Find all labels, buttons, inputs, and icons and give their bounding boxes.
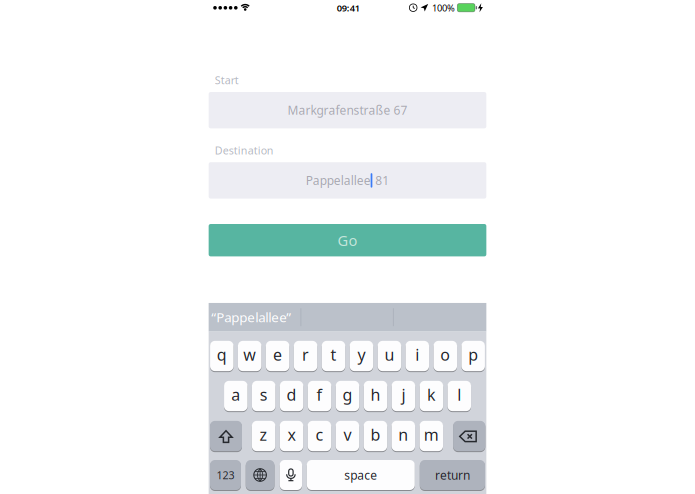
button[interactable]: r (294, 340, 317, 372)
button[interactable]: n (392, 420, 415, 452)
staticText: u (384, 344, 394, 365)
staticText: s (260, 384, 268, 405)
staticText: g (342, 384, 352, 405)
staticText: e (273, 344, 282, 365)
staticText: h (370, 384, 380, 405)
staticText: 81 (372, 172, 389, 188)
staticText: v (343, 424, 351, 445)
staticText: o (440, 344, 450, 365)
button[interactable]: z (252, 420, 275, 452)
button[interactable]: “Pappelallee” (209, 303, 301, 331)
staticText: m (424, 424, 439, 445)
button[interactable]: Dictate (280, 459, 302, 490)
button[interactable]: q (210, 340, 234, 372)
button[interactable]: c (308, 420, 331, 452)
button[interactable]: g (336, 380, 359, 412)
staticText: f (317, 384, 323, 405)
button[interactable]: h (364, 380, 387, 412)
button[interactable]: d (280, 380, 303, 412)
button[interactable]: l (448, 380, 471, 412)
button[interactable]: j (392, 380, 415, 412)
button[interactable]: y (350, 340, 373, 372)
button[interactable]: b (364, 420, 387, 452)
staticText: space (344, 467, 377, 483)
staticText: w (243, 344, 256, 365)
staticText: z (260, 424, 268, 445)
button[interactable]: o (434, 340, 457, 372)
staticText: return (435, 467, 470, 483)
staticText: l (457, 384, 461, 405)
button[interactable]: k (420, 380, 443, 412)
button[interactable]: u (378, 340, 401, 372)
staticText: n (398, 424, 408, 445)
button[interactable]: a (224, 380, 248, 412)
button[interactable]: e (266, 340, 289, 372)
button[interactable]: 123 (210, 459, 241, 490)
button[interactable]: t (322, 340, 345, 372)
button[interactable]: Next keyboard (246, 459, 274, 490)
staticText: p (468, 344, 478, 365)
button[interactable]: Go (209, 224, 486, 256)
staticText: Go (337, 230, 357, 250)
button[interactable]: space (307, 459, 415, 490)
staticText: Pappelallee (306, 172, 371, 188)
button[interactable]: Markgrafenstraße 67 (209, 92, 486, 128)
staticText: x (287, 424, 295, 445)
button[interactable]: x (280, 420, 303, 452)
staticText: y (357, 344, 365, 365)
button[interactable]: m (420, 420, 443, 452)
staticText: c (315, 424, 323, 445)
staticText: 100% (432, 2, 455, 14)
staticText: Start (215, 73, 239, 87)
button[interactable]: i (406, 340, 429, 372)
button[interactable]: p (461, 340, 485, 372)
staticText: 123 (216, 468, 234, 482)
staticText: b (370, 424, 380, 445)
staticText: k (427, 384, 436, 405)
button[interactable]: v (336, 420, 359, 452)
staticText: q (217, 344, 227, 365)
button[interactable]: f (308, 380, 331, 412)
staticText: Markgrafenstraße 67 (287, 102, 407, 118)
button[interactable]: return (420, 459, 485, 490)
button[interactable]: Shift (210, 420, 242, 452)
staticText: “Pappelallee” (211, 308, 291, 326)
staticText: r (302, 344, 309, 365)
staticText: a (231, 384, 240, 405)
staticText: Destination (215, 143, 274, 157)
button[interactable]: Delete (453, 420, 485, 452)
staticText: 09:41 (337, 2, 360, 14)
button[interactable]: w (238, 340, 261, 372)
staticText: t (330, 344, 336, 365)
button[interactable]: s (252, 380, 275, 412)
staticText: d (287, 384, 297, 405)
staticText: j (401, 384, 405, 405)
staticText: i (415, 344, 419, 365)
button[interactable]: Pappelallee (209, 162, 486, 199)
